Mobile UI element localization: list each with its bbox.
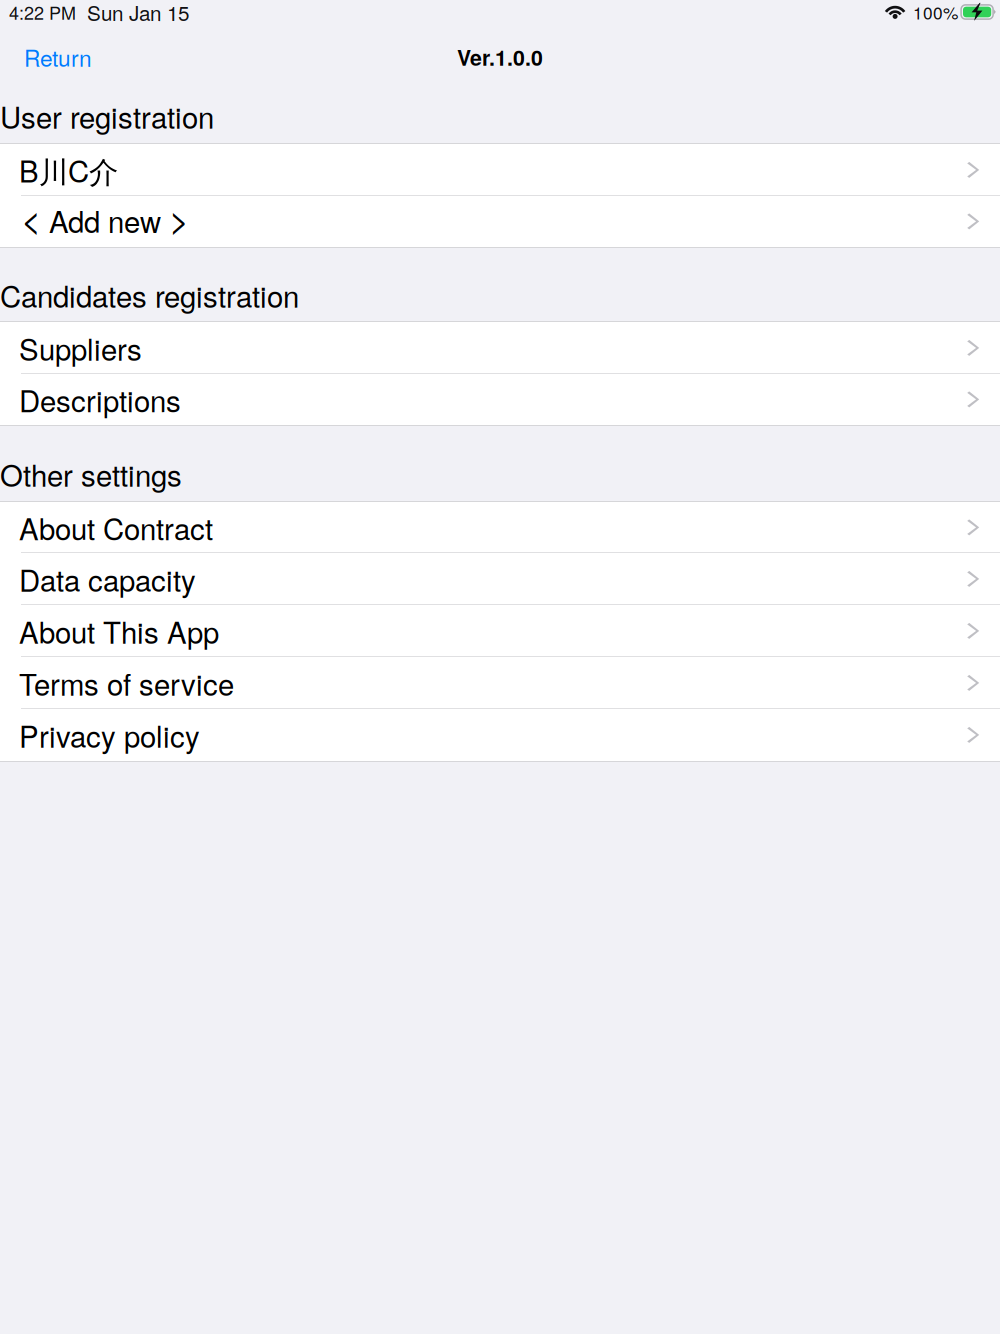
- staticText: 4:22 PM: [9, 0, 76, 25]
- staticText: Terms of service: [19, 662, 234, 704]
- staticText: Return: [24, 41, 92, 73]
- staticText: Privacy policy: [19, 714, 200, 756]
- staticText: Descriptions: [19, 378, 181, 420]
- button[interactable]: Data capacity: [0, 553, 1000, 605]
- button[interactable]: Descriptions: [0, 374, 1000, 425]
- staticText: B川C介: [19, 149, 118, 191]
- staticText: Data capacity: [19, 558, 196, 600]
- staticText: Suppliers: [19, 327, 142, 369]
- button[interactable]: Return: [0, 26, 106, 68]
- staticText: About This App: [19, 610, 219, 652]
- staticText: Sun Jan 15: [87, 0, 189, 27]
- staticText: Candidates registration: [0, 274, 299, 316]
- button[interactable]: About Contract: [0, 502, 1000, 553]
- button[interactable]: < Add new >: [0, 196, 1000, 247]
- button[interactable]: B川C介: [0, 144, 1000, 196]
- button[interactable]: Privacy policy: [0, 709, 1000, 761]
- staticText: Ver.1.0.0: [457, 42, 543, 72]
- staticText: Other settings: [0, 453, 182, 495]
- staticText: User registration: [0, 95, 214, 137]
- staticText: < Add new >: [21, 194, 189, 242]
- staticText: About Contract: [19, 506, 213, 548]
- button[interactable]: About This App: [0, 605, 1000, 657]
- staticText: 100%: [913, 0, 958, 24]
- button[interactable]: Suppliers: [0, 322, 1000, 374]
- button[interactable]: Terms of service: [0, 657, 1000, 709]
